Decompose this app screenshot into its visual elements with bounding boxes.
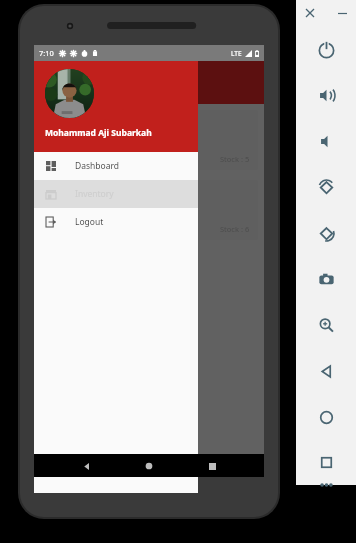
button[interactable]: Power xyxy=(296,26,356,72)
button[interactable]: Back xyxy=(75,455,97,477)
button[interactable]: Rotate right xyxy=(296,210,356,256)
staticText: 7:10 xyxy=(39,48,54,58)
staticText: Logout xyxy=(75,216,104,228)
staticText: Stock : 6 xyxy=(220,224,250,234)
button[interactable]: Home xyxy=(296,394,356,440)
button[interactable]: Back xyxy=(296,348,356,394)
button[interactable]: Recents xyxy=(201,455,223,477)
staticText: Inventory xyxy=(75,188,114,200)
staticText: Stock : 5 xyxy=(220,154,250,164)
staticText: Mohammad Aji Subarkah xyxy=(45,127,152,139)
button[interactable]: Dashboard xyxy=(34,152,198,180)
staticText: LTE xyxy=(231,49,242,58)
button[interactable]: Home xyxy=(138,455,160,477)
button[interactable]: Volume up xyxy=(296,72,356,118)
button[interactable]: Logout xyxy=(34,208,198,236)
button[interactable]: Screenshot xyxy=(296,256,356,302)
button[interactable]: Volume down xyxy=(296,118,356,164)
staticText: Dashboard xyxy=(75,160,120,172)
button[interactable]: Zoom xyxy=(296,302,356,348)
button[interactable]: Rotate left xyxy=(296,164,356,210)
button[interactable]: Minimize xyxy=(333,4,351,22)
button[interactable]: Overview xyxy=(296,440,356,485)
button[interactable]: Stock : 5 xyxy=(40,110,258,170)
button[interactable]: Stock : 6 xyxy=(40,180,258,240)
button[interactable]: Close xyxy=(301,4,319,22)
